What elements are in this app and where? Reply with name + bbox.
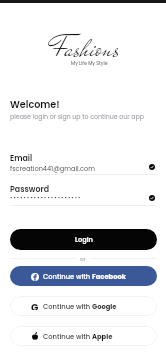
staticText: •••••••••••••••••••••: [10, 193, 82, 201]
staticText: Continue with Google: [43, 302, 117, 311]
staticText: fscreation441@gmail.com: [10, 164, 95, 173]
staticText: Email: [10, 153, 33, 164]
other: Apple: [31, 332, 39, 340]
staticText: Fashions: [52, 28, 120, 69]
staticText: Continue with Apple: [43, 332, 113, 341]
staticText: please login or sign up to continue our …: [10, 112, 144, 121]
button[interactable]: Google: [10, 296, 157, 316]
staticText: Continue with Facebook: [43, 272, 126, 281]
other: Verified: [149, 195, 155, 201]
staticText: Password: [10, 184, 49, 195]
staticText: My Life My Style: [71, 60, 108, 67]
staticText: or: [80, 255, 86, 262]
other: Google: [30, 301, 39, 310]
other: Verified: [149, 164, 155, 170]
button[interactable]: Continue with Facebook: [10, 266, 157, 286]
staticText: Login: [75, 235, 93, 244]
button[interactable]: Apple: [10, 326, 157, 346]
button[interactable]: Login: [10, 229, 157, 250]
staticText: G: [31, 301, 39, 310]
staticText: Welcome!: [10, 98, 60, 111]
